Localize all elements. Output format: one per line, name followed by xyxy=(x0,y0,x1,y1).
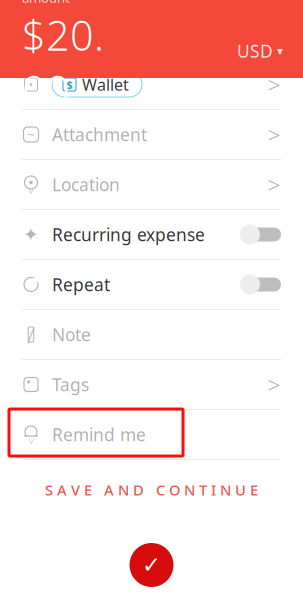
staticText: > xyxy=(267,119,280,149)
staticText: v xyxy=(28,182,33,197)
button[interactable]: Repeat xyxy=(0,260,303,310)
button[interactable]: Confirm xyxy=(129,543,173,587)
staticText: Location xyxy=(52,173,120,196)
button[interactable]: S A V E A N D C O N T I N U E xyxy=(0,460,303,513)
staticText: S A V E A N D C O N T I N U E xyxy=(45,480,258,499)
staticText: Repeat xyxy=(52,273,110,296)
button[interactable]: USD xyxy=(237,25,283,62)
staticText: ~ xyxy=(27,126,35,143)
staticText: ✦ xyxy=(23,224,39,245)
staticText: > xyxy=(267,69,280,99)
button[interactable]: Tags xyxy=(0,360,303,410)
staticText: Recurring expense xyxy=(52,223,205,246)
staticText: / xyxy=(27,319,35,349)
staticText: v xyxy=(29,434,33,447)
staticText: $20.00 xyxy=(22,7,104,117)
staticText: Attachment xyxy=(52,123,147,146)
staticText: Wallet xyxy=(82,74,129,95)
staticText: Expense amount xyxy=(22,0,74,6)
staticText: ✓ xyxy=(142,552,161,578)
button[interactable]: ✦ xyxy=(0,210,303,260)
staticText: USD xyxy=(237,39,273,62)
button[interactable]: v xyxy=(0,410,303,460)
staticText: Remind me xyxy=(52,423,146,446)
staticText: ▾ xyxy=(277,44,283,58)
button[interactable]: v xyxy=(0,160,303,210)
staticText: $ xyxy=(66,77,72,92)
button[interactable]: / xyxy=(0,310,303,360)
button[interactable]: $ xyxy=(0,60,303,110)
staticText: Note xyxy=(52,323,91,346)
staticText: > xyxy=(267,369,280,399)
staticText: > xyxy=(267,169,280,199)
staticText: Tags xyxy=(52,373,89,396)
button[interactable]: ~ xyxy=(0,110,303,160)
